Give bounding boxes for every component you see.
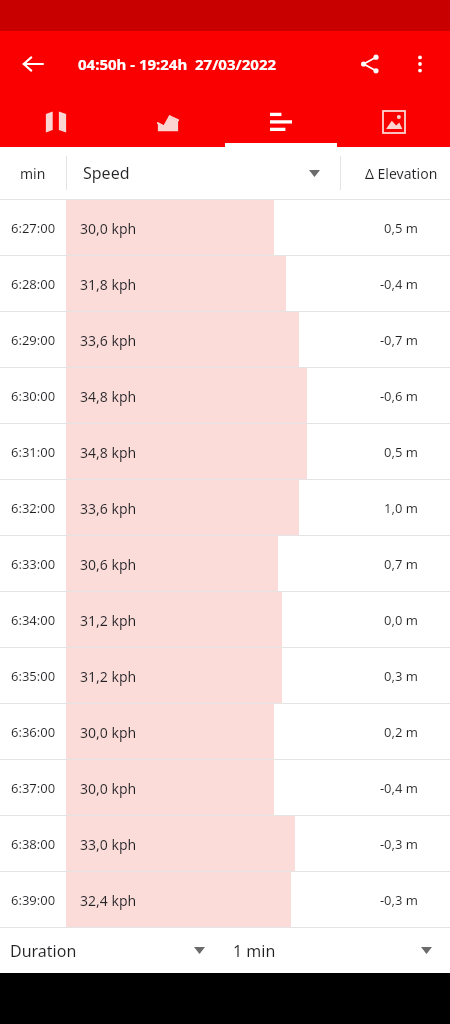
- staticText: 6:39:00: [11, 891, 56, 909]
- staticText: Duration: [10, 940, 194, 962]
- staticText: 6:38:00: [11, 835, 56, 853]
- button[interactable]: More options: [398, 42, 442, 86]
- button[interactable]: 6:27:00: [0, 200, 450, 256]
- staticText: 6:27:00: [11, 219, 56, 237]
- staticText: Δ Elevation: [365, 164, 438, 183]
- staticText: 30,0 kph: [80, 723, 137, 742]
- button[interactable]: 6:33:00: [0, 536, 450, 592]
- staticText: 30,0 kph: [80, 779, 137, 798]
- button[interactable]: Duration: [0, 928, 225, 973]
- staticText: 1 min: [233, 940, 421, 962]
- staticText: 0,5 m: [384, 443, 418, 461]
- staticText: 31,2 kph: [80, 667, 137, 686]
- staticText: 6:31:00: [11, 443, 56, 461]
- staticText: 31,2 kph: [80, 611, 137, 630]
- staticText: 0,0 m: [384, 611, 418, 629]
- staticText: 6:29:00: [11, 331, 56, 349]
- staticText: 6:32:00: [11, 499, 56, 517]
- staticText: 6:28:00: [11, 275, 56, 293]
- staticText: 30,0 kph: [80, 219, 137, 238]
- staticText: min: [20, 164, 46, 183]
- staticText: -0,4 m: [379, 275, 418, 293]
- button[interactable]: 6:38:00: [0, 816, 450, 872]
- staticText: 6:34:00: [11, 611, 56, 629]
- staticText: 6:33:00: [11, 555, 56, 573]
- button[interactable]: Table: [224, 97, 337, 147]
- button[interactable]: Map: [0, 97, 112, 147]
- button[interactable]: 6:31:00: [0, 424, 450, 480]
- button[interactable]: Photos: [337, 97, 450, 147]
- button[interactable]: 6:37:00: [0, 760, 450, 816]
- button[interactable]: 6:36:00: [0, 704, 450, 760]
- button[interactable]: 6:35:00: [0, 648, 450, 704]
- button[interactable]: 6:32:00: [0, 480, 450, 536]
- staticText: -0,3 m: [379, 835, 418, 853]
- staticText: 6:36:00: [11, 723, 56, 741]
- staticText: Speed: [83, 162, 309, 184]
- staticText: 0,2 m: [384, 723, 418, 741]
- staticText: 0,7 m: [384, 555, 418, 573]
- staticText: 32,4 kph: [80, 891, 137, 910]
- staticText: 33,6 kph: [80, 331, 137, 350]
- staticText: -0,4 m: [379, 779, 418, 797]
- staticText: 33,0 kph: [80, 835, 137, 854]
- staticText: 0,5 m: [384, 219, 418, 237]
- button[interactable]: Back: [10, 41, 56, 87]
- staticText: 33,6 kph: [80, 499, 137, 518]
- staticText: 31,8 kph: [80, 275, 137, 294]
- button[interactable]: Speed: [67, 147, 340, 199]
- button[interactable]: 6:29:00: [0, 312, 450, 368]
- button[interactable]: 6:30:00: [0, 368, 450, 424]
- staticText: -0,6 m: [379, 387, 418, 405]
- button[interactable]: 6:34:00: [0, 592, 450, 648]
- staticText: 34,8 kph: [80, 387, 137, 406]
- staticText: 34,8 kph: [80, 443, 137, 462]
- button[interactable]: Chart: [112, 97, 224, 147]
- staticText: 6:37:00: [11, 779, 56, 797]
- staticText: 30,6 kph: [80, 555, 137, 574]
- staticText: 6:30:00: [11, 387, 56, 405]
- staticText: 04:50h - 19:24h 27/03/2022: [78, 54, 277, 74]
- staticText: 1,0 m: [384, 499, 418, 517]
- staticText: -0,3 m: [379, 891, 418, 909]
- button[interactable]: 6:28:00: [0, 256, 450, 312]
- staticText: -0,7 m: [379, 331, 418, 349]
- button[interactable]: 1 min: [225, 928, 450, 973]
- staticText: 0,3 m: [384, 667, 418, 685]
- button[interactable]: 6:39:00: [0, 872, 450, 928]
- button[interactable]: Share: [348, 42, 392, 86]
- staticText: 6:35:00: [11, 667, 56, 685]
